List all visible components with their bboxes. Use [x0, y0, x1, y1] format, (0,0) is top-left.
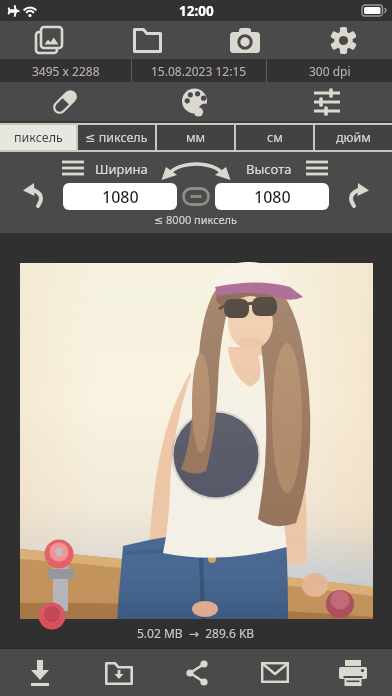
button[interactable]: 300 dpi: [267, 59, 392, 82]
staticText: ≤ пиксель: [85, 129, 148, 146]
staticText: Высота: [246, 160, 292, 178]
button[interactable]: см: [236, 125, 313, 150]
button[interactable]: [183, 188, 209, 205]
staticText: 15.08.2023 12:15: [151, 63, 247, 79]
button[interactable]: [130, 82, 261, 121]
staticText: см: [267, 129, 283, 146]
button[interactable]: дюйм: [315, 125, 392, 150]
button[interactable]: [236, 649, 314, 696]
staticText: дюйм: [336, 129, 371, 146]
staticText: 300 dpi: [309, 63, 351, 79]
button[interactable]: 1080: [63, 183, 177, 210]
button[interactable]: [158, 649, 236, 696]
button[interactable]: ≤ пиксель: [78, 125, 155, 150]
button[interactable]: [261, 82, 392, 121]
button[interactable]: мм: [157, 125, 234, 150]
button[interactable]: [62, 160, 84, 176]
button[interactable]: [196, 21, 294, 59]
button[interactable]: [346, 182, 372, 208]
button[interactable]: 3495 x 2288: [0, 59, 131, 82]
button[interactable]: [20, 182, 46, 208]
staticText: 1080: [254, 186, 291, 208]
staticText: мм: [186, 129, 206, 146]
staticText: 3495 x 2288: [32, 63, 100, 79]
button[interactable]: [0, 21, 98, 59]
button[interactable]: [294, 21, 392, 59]
staticText: 12:00: [179, 2, 214, 20]
button[interactable]: [160, 156, 232, 180]
button[interactable]: 1080: [215, 183, 329, 210]
button[interactable]: пиксель: [0, 125, 76, 150]
button[interactable]: [306, 160, 328, 176]
button[interactable]: 15.08.2023 12:15: [132, 59, 266, 82]
staticText: пиксель: [14, 129, 63, 146]
button[interactable]: [98, 21, 196, 59]
button[interactable]: [0, 649, 79, 696]
staticText: Ширина: [95, 160, 148, 178]
button[interactable]: [314, 649, 392, 696]
staticText: ≤ 8000 пиксель: [154, 212, 238, 227]
button[interactable]: [0, 82, 130, 121]
button[interactable]: [79, 649, 158, 696]
staticText: 5.02 MB → 289.6 KB: [137, 625, 255, 641]
staticText: 1080: [102, 186, 139, 208]
